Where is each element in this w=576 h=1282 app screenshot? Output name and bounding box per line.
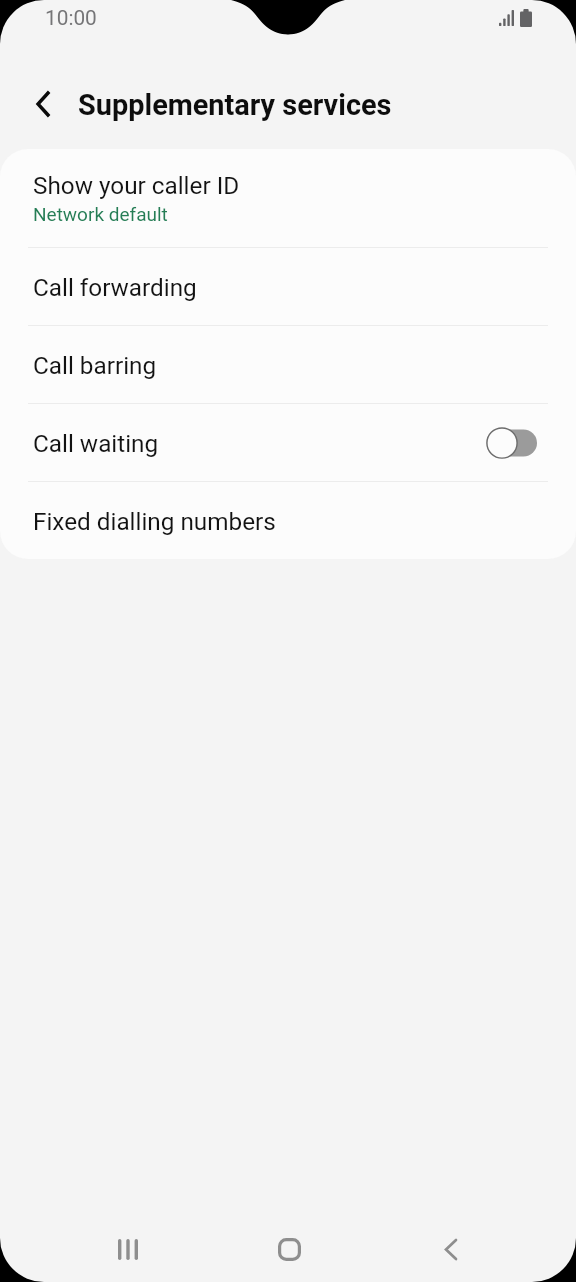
staticText: Call barring xyxy=(33,351,157,379)
staticText: Show your caller ID xyxy=(33,171,240,199)
button[interactable]: Show your caller ID xyxy=(0,149,576,247)
staticText: Call waiting xyxy=(33,429,486,457)
staticText: Network default xyxy=(33,203,168,225)
button[interactable]: Recent apps xyxy=(47,1216,209,1282)
staticText: Supplementary services xyxy=(78,88,392,122)
button[interactable]: Call barring xyxy=(0,326,576,403)
button[interactable]: Back xyxy=(14,75,72,133)
button[interactable]: Fixed dialling numbers xyxy=(0,482,576,559)
button[interactable]: Call waiting xyxy=(0,404,576,481)
staticText: Fixed dialling numbers xyxy=(33,507,276,535)
staticText: Call forwarding xyxy=(33,273,197,301)
button[interactable]: Back xyxy=(370,1216,531,1282)
button[interactable]: Home xyxy=(209,1216,370,1282)
staticText: 10:00 xyxy=(45,6,97,30)
button[interactable]: Call forwarding xyxy=(0,248,576,325)
